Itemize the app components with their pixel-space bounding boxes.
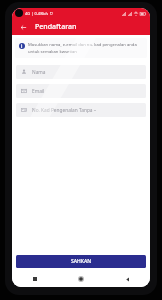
staticText: i: [21, 43, 23, 49]
staticText: Pendaftaran: [35, 22, 77, 32]
button[interactable]: Back: [104, 271, 150, 287]
button[interactable]: Recents: [12, 271, 58, 287]
staticText: SAHKAN: [71, 258, 92, 265]
button[interactable]: No. Kad Pengenalan Tanpa –: [16, 103, 146, 117]
button[interactable]: Home: [58, 271, 104, 287]
staticText: Email: [32, 88, 45, 95]
staticText: No. Kad Pengenalan Tanpa –: [32, 107, 97, 114]
staticText: 4G | 0.48b/s: [25, 11, 49, 16]
button[interactable]: SAHKAN: [16, 255, 146, 268]
staticText: Nama: [32, 69, 46, 76]
button[interactable]: Email: [16, 84, 146, 98]
button[interactable]: Nama: [16, 65, 146, 79]
button[interactable]: Back: [16, 20, 30, 34]
staticText: Masukkan nama, e-email dan no. kad penge…: [28, 42, 143, 54]
